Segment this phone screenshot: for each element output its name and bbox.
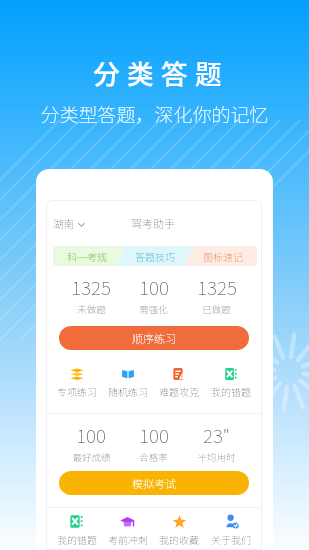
staticText: 驾考助手 bbox=[131, 215, 175, 231]
button[interactable]: 考前冲刺 bbox=[102, 514, 153, 546]
staticText: 100 bbox=[76, 421, 106, 449]
button[interactable]: 1325 bbox=[185, 273, 248, 316]
button[interactable]: 图标速记 bbox=[189, 246, 257, 266]
staticText: 23" bbox=[203, 421, 230, 449]
button[interactable]: 100 bbox=[122, 421, 185, 464]
staticText: 已做题 bbox=[202, 302, 231, 316]
button[interactable]: 关于我们 bbox=[205, 514, 257, 546]
staticText: 分类型答题，深化你的记忆 bbox=[40, 100, 269, 128]
button[interactable]: 1325 bbox=[60, 273, 122, 316]
staticText: 平均用时 bbox=[197, 450, 236, 464]
button[interactable]: 顺序练习 bbox=[59, 326, 249, 350]
staticText: 随机练习 bbox=[108, 384, 148, 398]
staticText: 未做题 bbox=[77, 302, 106, 316]
staticText: 湖南 bbox=[53, 216, 74, 231]
button[interactable]: 难题攻克 bbox=[153, 367, 205, 398]
button[interactable]: 科一考规 bbox=[53, 246, 121, 266]
staticText: 100 bbox=[139, 421, 169, 449]
staticText: 我的错题 bbox=[57, 532, 97, 546]
button[interactable]: 随机练习 bbox=[102, 367, 153, 398]
staticText: 合格率 bbox=[139, 450, 168, 464]
staticText: 关于我们 bbox=[211, 532, 251, 546]
button[interactable]: 我的错题 bbox=[205, 367, 257, 398]
button[interactable]: 答题技巧 bbox=[121, 246, 189, 266]
staticText: 考前冲刺 bbox=[108, 532, 148, 546]
staticText: 专项练习 bbox=[57, 384, 97, 398]
button[interactable]: 100 bbox=[122, 273, 185, 316]
staticText: 分类答题 bbox=[93, 53, 229, 90]
staticText: 图标速记 bbox=[203, 249, 243, 263]
staticText: 1325 bbox=[71, 273, 111, 301]
staticText: 答题技巧 bbox=[135, 249, 175, 263]
button[interactable]: 湖南 bbox=[53, 216, 85, 231]
staticText: 100 bbox=[139, 273, 169, 301]
button[interactable]: 我的错题 bbox=[51, 514, 102, 546]
button[interactable]: 专项练习 bbox=[51, 367, 102, 398]
staticText: 我的错题 bbox=[211, 384, 251, 398]
staticText: 1325 bbox=[197, 273, 237, 301]
staticText: 需强化 bbox=[139, 302, 168, 316]
button[interactable]: 23" bbox=[185, 421, 248, 464]
staticText: 我的收藏 bbox=[159, 532, 199, 546]
staticText: 最好成绩 bbox=[72, 450, 111, 464]
staticText: 难题攻克 bbox=[159, 384, 199, 398]
button[interactable]: 我的收藏 bbox=[153, 514, 205, 546]
staticText: 模拟考试 bbox=[132, 475, 176, 491]
button[interactable]: 100 bbox=[60, 421, 122, 464]
button[interactable]: 模拟考试 bbox=[59, 471, 249, 495]
staticText: 科一考规 bbox=[67, 249, 107, 263]
staticText: 顺序练习 bbox=[132, 330, 176, 346]
